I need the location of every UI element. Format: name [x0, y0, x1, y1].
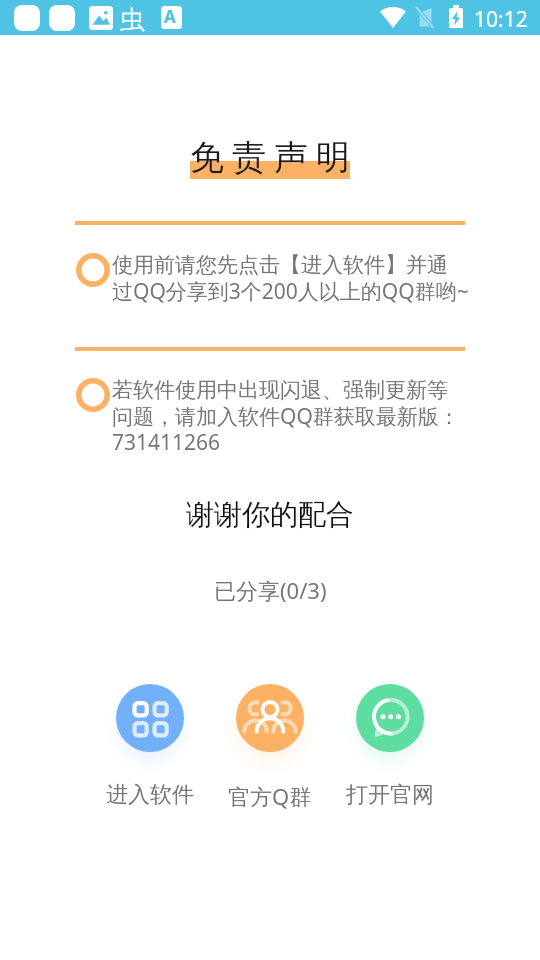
button[interactable]: 进入软件: [102, 684, 198, 809]
staticText: 打开官网: [346, 781, 434, 809]
button[interactable]: 打开官网: [342, 684, 438, 809]
staticText: 使用前请您先点击【进入软件】并通 过QQ分享到3个200人以上的QQ群哟~: [112, 252, 469, 306]
staticText: 虫: [120, 4, 145, 35]
staticText: 10:12: [474, 5, 528, 34]
staticText: 已分享(0/3): [214, 575, 327, 605]
button[interactable]: 官方Q群: [222, 684, 318, 811]
staticText: 谢谢你的配合: [186, 497, 354, 532]
staticText: 官方Q群: [228, 781, 312, 811]
staticText: 若软件使用中出现闪退、强制更新等 问题，请加入软件QQ群获取最新版： 73141…: [112, 377, 460, 456]
staticText: 免责声明: [186, 136, 354, 179]
staticText: 进入软件: [106, 781, 194, 809]
staticText: A: [164, 5, 176, 28]
